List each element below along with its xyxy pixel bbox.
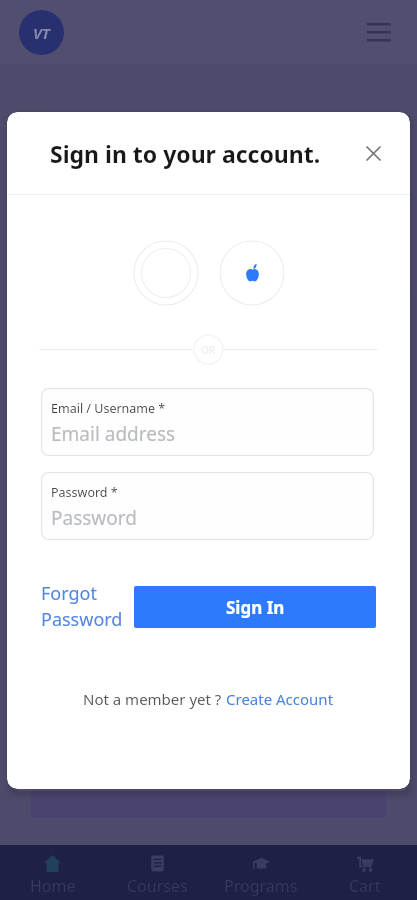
- button[interactable]: Email / Username *: [41, 388, 374, 456]
- staticText: Courses: [127, 875, 188, 897]
- button[interactable]: Forgot Password: [41, 581, 134, 632]
- staticText: Forgot Password: [41, 581, 134, 632]
- button[interactable]: Sign in with Google: [133, 240, 199, 306]
- staticText: Home: [30, 875, 76, 897]
- button[interactable]: Sign in with Apple: [219, 240, 285, 306]
- staticText: Sign in to your account.: [50, 138, 321, 169]
- staticText: Password *: [51, 484, 118, 501]
- button[interactable]: Programs: [209, 845, 313, 900]
- button[interactable]: Home logo: [19, 10, 64, 55]
- button[interactable]: Create Account: [226, 689, 334, 709]
- staticText: Email / Username *: [51, 400, 166, 417]
- button[interactable]: Sign In: [134, 586, 376, 628]
- button[interactable]: Password *: [41, 472, 374, 540]
- button[interactable]: Open menu: [361, 14, 397, 50]
- button[interactable]: Close: [358, 138, 388, 168]
- button[interactable]: Courses: [105, 845, 209, 900]
- staticText: Password: [51, 505, 137, 531]
- staticText: Not a member yet ?: [83, 689, 226, 709]
- button[interactable]: Cart: [313, 845, 417, 900]
- staticText: Create Account: [226, 689, 334, 709]
- staticText: Programs: [224, 875, 298, 897]
- staticText: OR: [201, 343, 216, 357]
- staticText: Email address: [51, 421, 176, 447]
- staticText: Sign In: [226, 596, 285, 619]
- staticText: VT: [33, 23, 50, 43]
- staticText: Cart: [349, 875, 381, 897]
- button[interactable]: Home: [0, 845, 105, 900]
